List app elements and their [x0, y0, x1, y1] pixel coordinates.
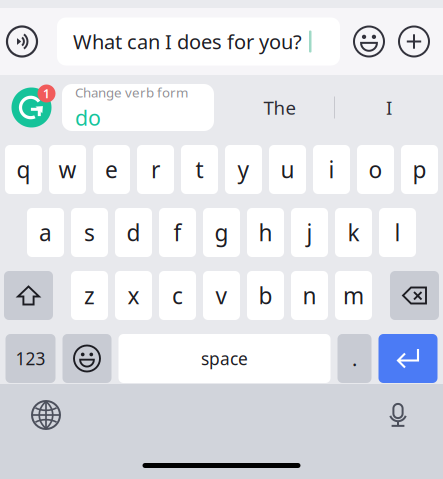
button[interactable]: w [49, 145, 86, 194]
staticText: z [84, 280, 95, 310]
button[interactable]: j [291, 208, 328, 257]
button[interactable]: t [181, 145, 218, 194]
staticText: f [173, 217, 181, 247]
button[interactable] [390, 271, 439, 320]
staticText: . [352, 345, 357, 372]
staticText: 1 [43, 85, 50, 101]
button[interactable]: n [291, 271, 328, 320]
button[interactable]: x [115, 271, 152, 320]
staticText: u [280, 154, 294, 184]
button[interactable]: f [159, 208, 196, 257]
button[interactable]: The [226, 83, 334, 131]
staticText: h [258, 217, 272, 247]
staticText: c [172, 280, 183, 310]
button[interactable]: r [137, 145, 174, 194]
button[interactable]: y [225, 145, 262, 194]
staticText: 123 [15, 347, 45, 370]
button[interactable] [62, 334, 111, 383]
staticText: I [386, 95, 392, 120]
staticText: s [84, 217, 95, 247]
button[interactable]: Next keyboard [28, 397, 64, 433]
staticText: The [263, 95, 296, 120]
button[interactable]: a [27, 208, 64, 257]
staticText: What can I does for you? [73, 28, 302, 55]
button[interactable]: s [71, 208, 108, 257]
staticText: o [368, 154, 382, 184]
button[interactable]: space [118, 334, 330, 383]
staticText: i [328, 154, 334, 184]
staticText: t [195, 154, 203, 184]
staticText: e [105, 154, 118, 184]
button[interactable]: Voice [0, 17, 44, 65]
staticText: w [58, 154, 76, 184]
staticText: r [151, 154, 160, 184]
button[interactable]: 123 [5, 334, 55, 383]
button[interactable]: d [115, 208, 152, 257]
staticText: k [347, 217, 359, 247]
button[interactable]: b [247, 271, 284, 320]
button[interactable]: h [247, 208, 284, 257]
button[interactable]: u [269, 145, 306, 194]
button[interactable]: g [203, 208, 240, 257]
button[interactable]: Return [378, 334, 437, 383]
staticText: l [394, 217, 400, 247]
button[interactable]: c [159, 271, 196, 320]
staticText: n [302, 280, 316, 310]
staticText: space [201, 347, 248, 370]
staticText: a [39, 217, 52, 247]
button[interactable]: p [401, 145, 438, 194]
button[interactable]: q [5, 145, 42, 194]
button[interactable] [4, 271, 53, 320]
staticText: y [237, 154, 249, 184]
staticText: j [306, 217, 312, 247]
button[interactable]: l [379, 208, 416, 257]
button[interactable]: Change verb form [62, 84, 214, 131]
button[interactable]: i [313, 145, 350, 194]
staticText: x [127, 280, 139, 310]
staticText: d [126, 217, 140, 247]
staticText: do [75, 103, 101, 131]
staticText: Change verb form [75, 83, 188, 101]
button[interactable]: v [203, 271, 240, 320]
staticText: p [412, 154, 426, 184]
button[interactable]: e [93, 145, 130, 194]
staticText: v [215, 280, 227, 310]
button[interactable]: Grammarly suggestions [11, 81, 52, 133]
staticText: b [258, 280, 272, 310]
button[interactable]: I [335, 83, 443, 131]
staticText: q [16, 154, 30, 184]
button[interactable]: k [335, 208, 372, 257]
button[interactable]: Emoji [352, 17, 386, 65]
button[interactable]: m [335, 271, 372, 320]
button[interactable]: Add [397, 17, 431, 65]
button[interactable]: . [337, 334, 371, 383]
button[interactable]: Dictation [380, 397, 416, 433]
button[interactable]: o [357, 145, 394, 194]
staticText: m [343, 280, 364, 310]
button[interactable]: z [71, 271, 108, 320]
staticText: g [214, 217, 228, 247]
